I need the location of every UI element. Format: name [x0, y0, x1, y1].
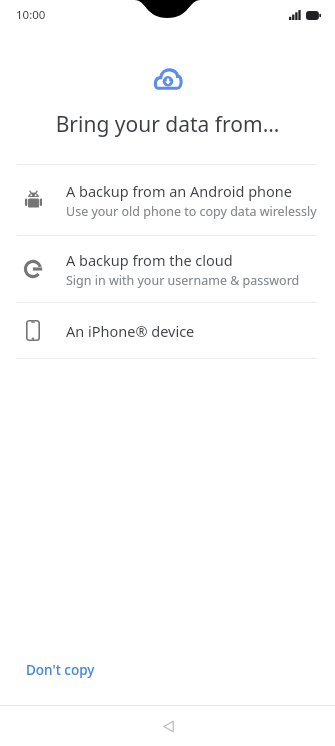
button[interactable]: Google account [0, 236, 335, 302]
staticText: Bring your data from… [0, 110, 335, 139]
other: Google account [23, 259, 43, 279]
staticText: An iPhone® device [66, 321, 195, 341]
staticText: Use your old phone to copy data wireless… [66, 203, 317, 220]
button[interactable]: iPhone device [0, 303, 335, 358]
staticText: A backup from an Android phone [66, 181, 292, 201]
other: iPhone device [26, 320, 40, 341]
staticText: Don't copy [26, 661, 95, 679]
staticText: 10:00 [16, 7, 46, 23]
button[interactable]: Back [146, 706, 190, 746]
other: Android phone [25, 190, 42, 210]
button[interactable]: Don't copy [16, 655, 105, 685]
button[interactable]: Android phone [0, 165, 335, 235]
staticText: A backup from the cloud [66, 250, 233, 270]
staticText: Sign in with your username & password [66, 272, 300, 289]
